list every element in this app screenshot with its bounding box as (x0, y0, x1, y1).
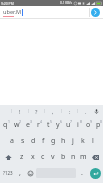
button[interactable]: Go (89, 6, 101, 18)
button[interactable]: . (77, 165, 87, 181)
button[interactable]: . (77, 105, 94, 117)
staticText: ?123 (3, 170, 13, 176)
staticText: 4 (40, 119, 42, 124)
staticText: d (31, 136, 36, 146)
button[interactable]: ! (11, 105, 28, 117)
staticText: x (31, 152, 35, 162)
button[interactable]: l (88, 133, 98, 149)
button[interactable]: 0 (93, 117, 103, 133)
button[interactable]: 7 (63, 117, 73, 133)
staticText: m (80, 152, 87, 162)
button[interactable]: Backspace (88, 149, 103, 165)
staticText: y (56, 120, 60, 130)
staticText: 0 (100, 119, 102, 124)
button[interactable]: 9 (83, 117, 93, 133)
staticText: , (19, 168, 21, 178)
staticText: 9 (90, 119, 92, 124)
button[interactable]: 5 (43, 117, 53, 133)
button[interactable]: d (28, 133, 38, 149)
button[interactable]: 3 (22, 117, 33, 133)
staticText: ! (19, 108, 21, 115)
staticText: 3 (30, 119, 32, 124)
button[interactable]: n (68, 149, 78, 165)
staticText: a (10, 136, 14, 146)
button[interactable]: , (44, 105, 61, 117)
staticText: p (96, 120, 101, 130)
button[interactable]: x (27, 149, 38, 165)
staticText: uber.M (3, 8, 22, 16)
staticText: . (81, 168, 83, 178)
staticText: 7 (70, 119, 72, 124)
staticText: s (21, 136, 25, 146)
button[interactable]: f (38, 133, 48, 149)
button[interactable]: , (15, 165, 25, 181)
button[interactable]: ?123 (0, 165, 15, 181)
staticText: f (42, 136, 45, 146)
button[interactable]: v (48, 149, 58, 165)
staticText: z (20, 152, 24, 162)
staticText: 6 (60, 119, 62, 124)
button[interactable]: Shift (0, 149, 16, 165)
staticText: q (3, 120, 8, 130)
button[interactable]: 4 (33, 117, 43, 133)
button[interactable]: g (48, 133, 58, 149)
button[interactable]: b (58, 149, 68, 165)
staticText: 2 (19, 119, 21, 124)
staticText: g (51, 136, 56, 146)
button[interactable]: a (6, 133, 17, 149)
button[interactable] (0, 105, 12, 117)
button[interactable]: k (78, 133, 88, 149)
staticText: h (61, 136, 66, 146)
button[interactable]: Enter (87, 165, 103, 181)
button[interactable]: 2 (11, 117, 22, 133)
staticText: u (66, 120, 71, 130)
staticText: i (77, 120, 79, 130)
button[interactable]: m (78, 149, 88, 165)
button[interactable]: 1 (0, 117, 11, 133)
staticText: w (14, 120, 20, 130)
button[interactable]: c (38, 149, 48, 165)
button[interactable]: Voice input (89, 105, 103, 117)
button[interactable]: ? (28, 105, 45, 117)
button[interactable]: h (58, 133, 68, 149)
staticText: 0.1 KB/s (60, 1, 73, 5)
button[interactable]: Emoji (25, 165, 35, 181)
staticText: n (71, 152, 76, 162)
staticText: l (92, 136, 94, 146)
button[interactable]: uber.M (0, 6, 86, 18)
staticText: e (26, 120, 30, 130)
button[interactable]: 6 (53, 117, 63, 133)
staticText: t (47, 120, 50, 130)
button[interactable]: : (61, 105, 78, 117)
staticText: 8 (80, 119, 82, 124)
staticText: 5 (50, 119, 52, 124)
staticText: b (61, 152, 66, 162)
button[interactable]: s (17, 133, 28, 149)
staticText: k (81, 136, 85, 146)
staticText: c (41, 152, 45, 162)
button[interactable]: 8 (73, 117, 83, 133)
staticText: . (85, 108, 87, 115)
button[interactable]: z (16, 149, 27, 165)
button[interactable]: j (68, 133, 78, 149)
staticText: : (69, 108, 71, 115)
staticText: 1 (8, 119, 10, 124)
staticText: 9:20 PM (1, 1, 14, 6)
staticText: j (72, 136, 74, 146)
staticText: v (51, 152, 55, 162)
staticText: o (86, 120, 91, 130)
staticText: r (37, 120, 40, 130)
staticText: ? (35, 108, 38, 115)
staticText: , (52, 108, 54, 115)
